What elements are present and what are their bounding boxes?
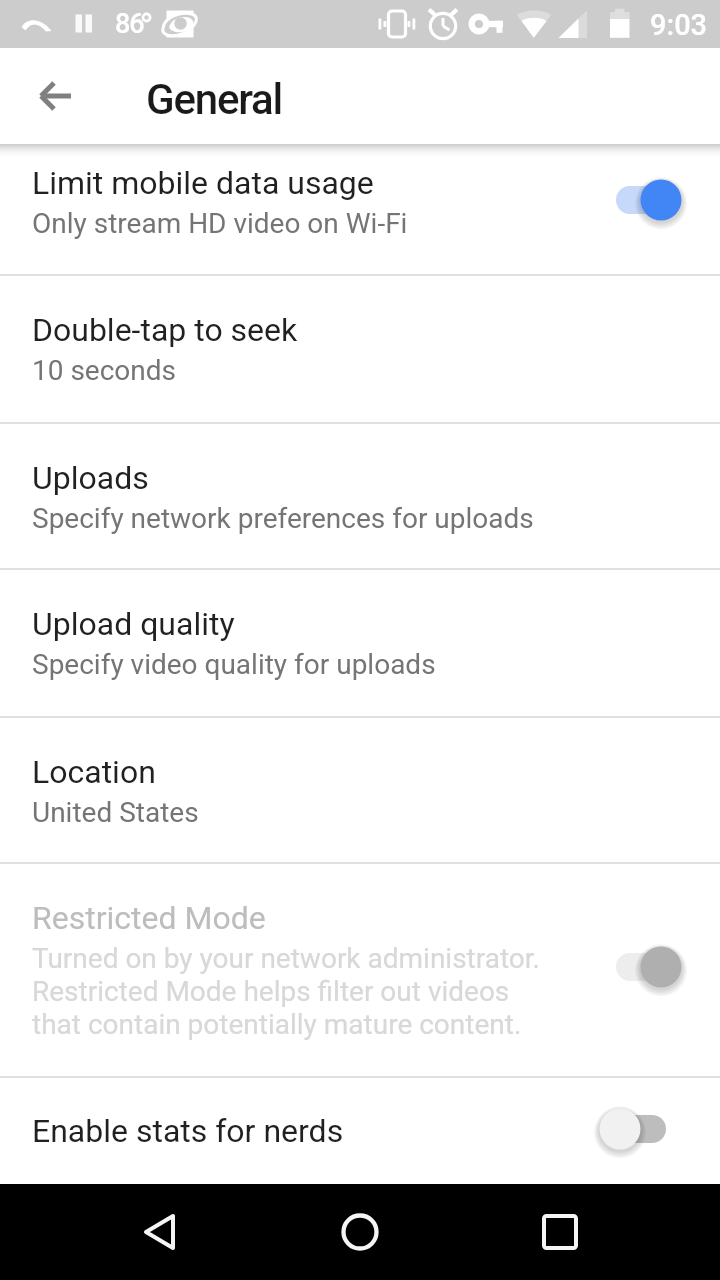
staticText: Enable stats for nerds [32, 1112, 344, 1150]
staticText: General [146, 75, 283, 124]
button[interactable]: Back [24, 64, 88, 128]
button[interactable]: Toggle [600, 172, 704, 228]
staticText: Specify video quality for uploads [32, 648, 436, 681]
staticText: Double-tap to seek [32, 311, 298, 349]
staticText: Location [32, 753, 156, 791]
staticText: 9:03 [650, 8, 708, 42]
button[interactable]: Home [320, 1192, 400, 1272]
staticText: that contain potentially mature content. [32, 1008, 522, 1041]
button[interactable]: Toggle [600, 1101, 704, 1157]
button[interactable]: Uploads [0, 424, 720, 568]
button[interactable]: Recent apps [520, 1192, 600, 1272]
button[interactable]: Limit mobile data usage [0, 144, 720, 274]
staticText: Specify network preferences for uploads [32, 502, 534, 535]
button[interactable]: Location [0, 718, 720, 862]
staticText: Limit mobile data usage [32, 164, 374, 202]
staticText: Turned on by your network administrator. [32, 942, 540, 975]
staticText: Restricted Mode helps filter out videos [32, 975, 510, 1008]
staticText: Only stream HD video on Wi-Fi [32, 207, 408, 240]
button[interactable]: Restricted Mode [0, 864, 720, 1076]
staticText: Uploads [32, 459, 149, 497]
button[interactable]: Toggle [600, 939, 704, 995]
button[interactable]: Upload quality [0, 570, 720, 716]
button[interactable]: Double-tap to seek [0, 276, 720, 422]
staticText: Upload quality [32, 605, 235, 643]
staticText: 10 seconds [32, 354, 177, 387]
button[interactable]: Enable stats for nerds [0, 1078, 720, 1184]
staticText: United States [32, 796, 199, 829]
staticText: 86 [115, 8, 144, 40]
staticText: Restricted Mode [32, 899, 266, 937]
button[interactable]: Back [120, 1192, 200, 1272]
